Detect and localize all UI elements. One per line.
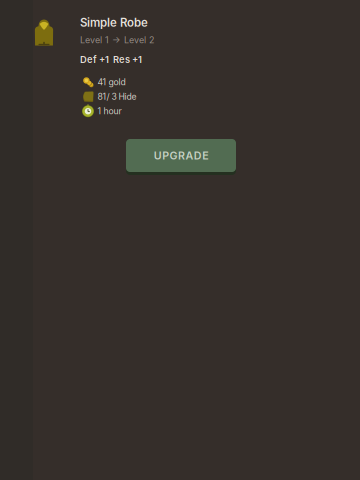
staticText: 1 hour bbox=[97, 106, 121, 116]
staticText: Simple Robe bbox=[80, 16, 148, 29]
staticText: 41 gold bbox=[97, 77, 125, 87]
button[interactable]: UPGRADE bbox=[126, 139, 236, 175]
staticText: Def +1 Res +1 bbox=[80, 54, 142, 65]
staticText: 81/ 3 Hide bbox=[97, 91, 136, 102]
staticText: Level 1 → Level 2 bbox=[80, 35, 154, 45]
staticText: UPGRADE bbox=[154, 149, 208, 162]
